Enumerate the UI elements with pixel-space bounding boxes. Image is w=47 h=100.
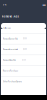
staticText: Other Purchase Options bbox=[3, 81, 22, 82]
button[interactable]: Remove Interstitials bbox=[1, 44, 46, 55]
staticText: Remove Interstitials bbox=[3, 48, 18, 50]
staticText: 9:41 bbox=[2, 4, 6, 6]
button[interactable]: Restore Purchase bbox=[1, 66, 46, 76]
button[interactable]: Other Purchase Options bbox=[1, 76, 46, 87]
staticText: Remove Ads bbox=[1, 15, 18, 18]
staticText: $0.99 bbox=[23, 49, 27, 50]
staticText: Restore Purchase bbox=[3, 70, 18, 72]
button[interactable]: Remove Banner Ads bbox=[1, 34, 46, 44]
button[interactable]: Full Version bbox=[1, 23, 46, 34]
staticText: $1.99 bbox=[22, 59, 26, 61]
staticText: Full Version bbox=[3, 27, 11, 29]
staticText: $0.99 bbox=[23, 38, 27, 40]
button[interactable]: Remove Video Ads bbox=[1, 55, 46, 66]
staticText: Remove Banner Ads bbox=[3, 38, 18, 40]
staticText: ▮▮▮ bbox=[42, 4, 45, 6]
staticText: Remove Video Ads bbox=[3, 59, 16, 61]
